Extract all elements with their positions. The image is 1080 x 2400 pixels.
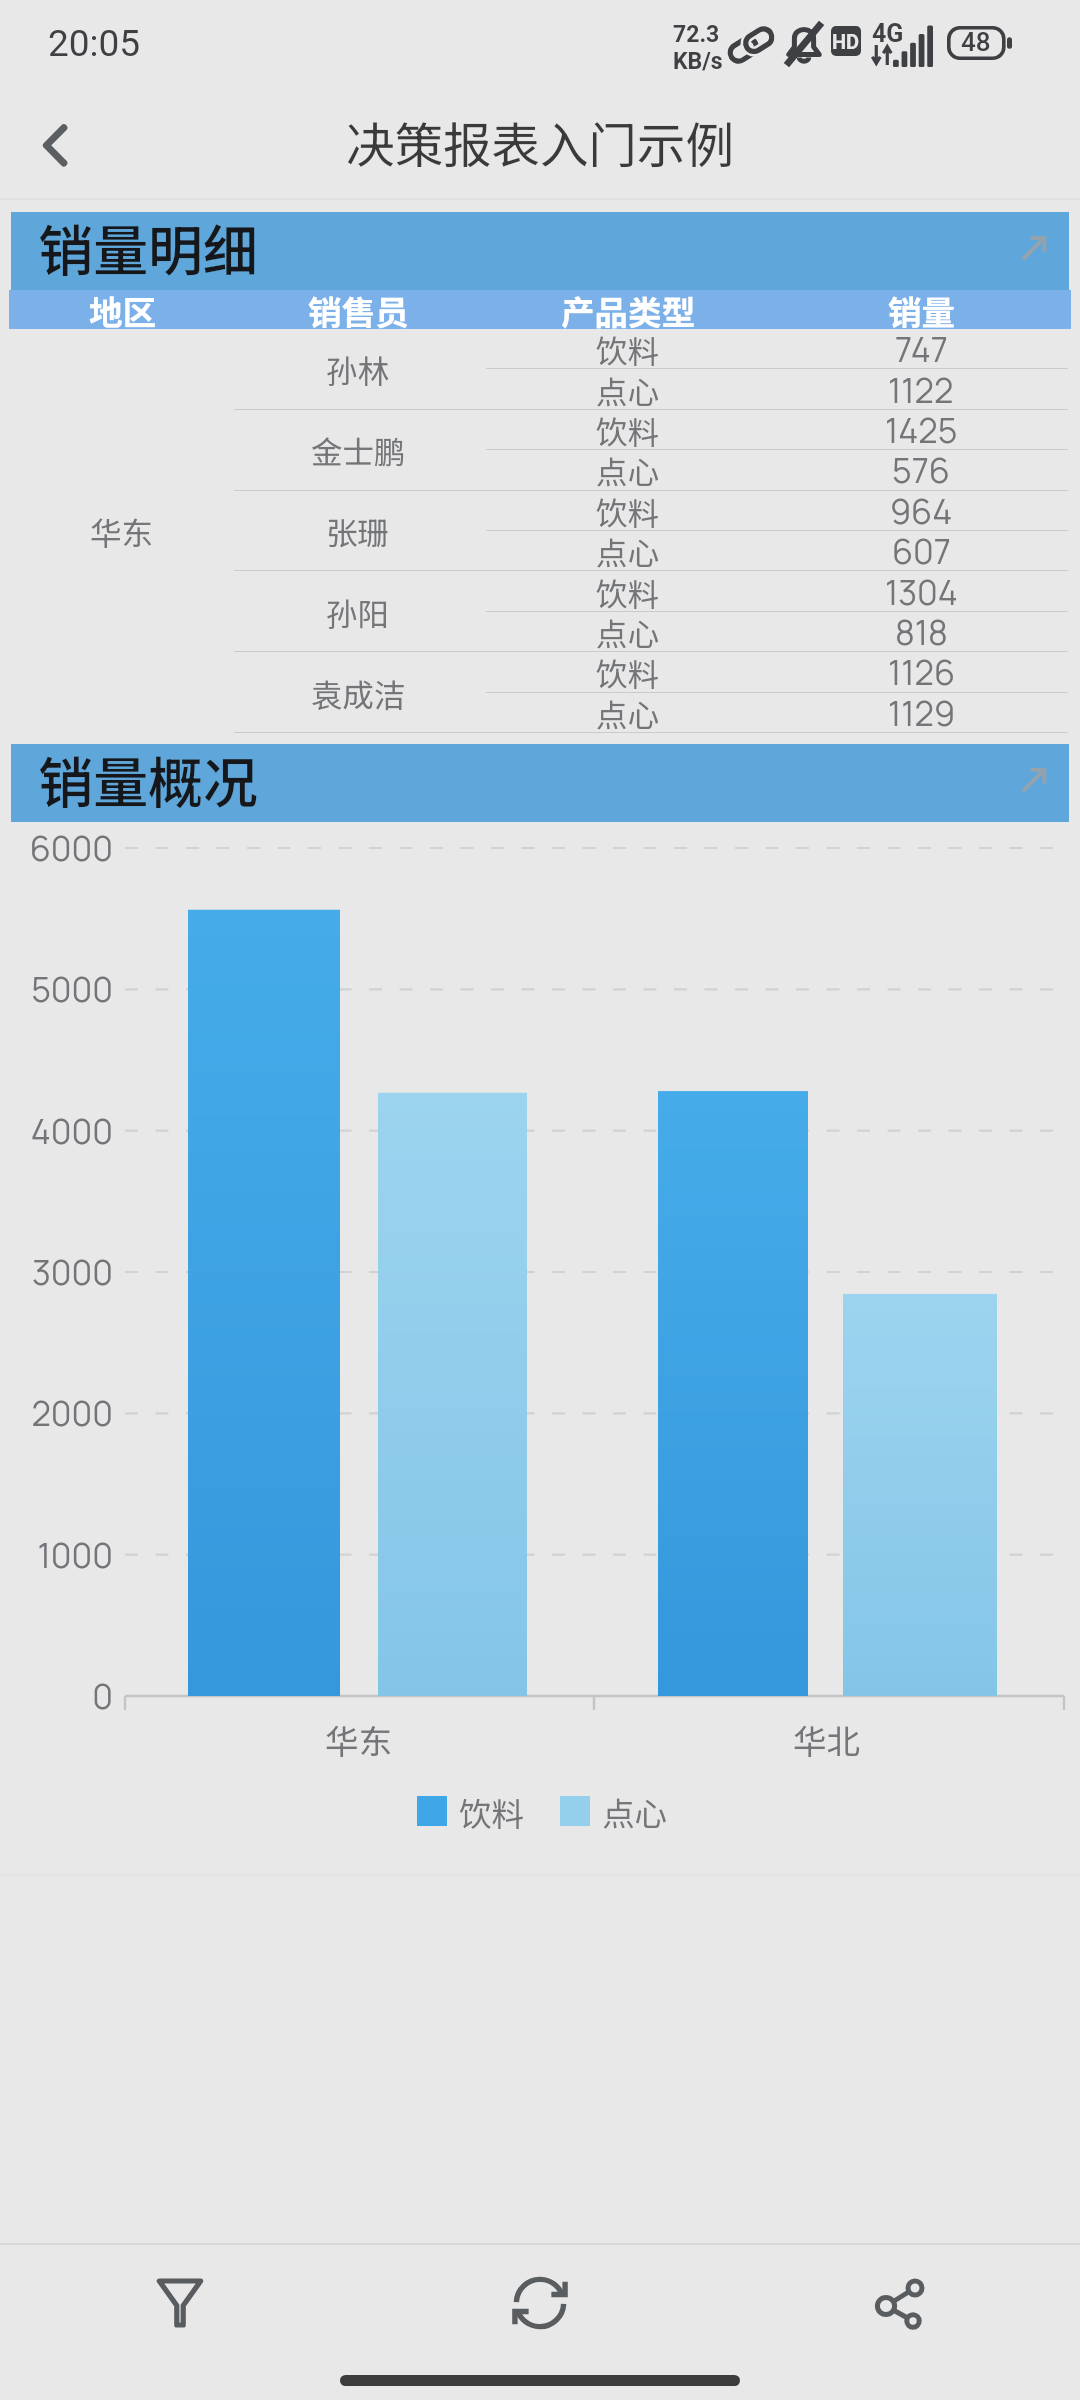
staticText: 20:05: [48, 22, 141, 65]
staticText: 6000: [29, 825, 113, 871]
staticText: 地区: [89, 286, 156, 335]
staticText: 607: [892, 528, 951, 574]
staticText: 点心: [596, 367, 660, 413]
staticText: 饮料: [596, 488, 660, 534]
staticText: 销量: [888, 286, 955, 335]
staticText: 1126: [888, 649, 955, 695]
staticText: HD: [832, 30, 860, 53]
button[interactable]: Refresh: [360, 2246, 720, 2360]
staticText: 576: [892, 447, 950, 493]
staticText: 1425: [885, 407, 958, 453]
staticText: 点心: [596, 528, 660, 574]
button[interactable]: 销量明细: [11, 212, 1069, 290]
staticText: 销量概况: [38, 739, 259, 817]
staticText: 华东: [90, 508, 154, 554]
button[interactable]: 销量概况: [11, 744, 1069, 822]
staticText: 48: [961, 27, 991, 57]
button[interactable]: Filter: [0, 2246, 360, 2360]
staticText: 0: [92, 1673, 113, 1719]
staticText: 产品类型: [561, 286, 695, 335]
staticText: 点心: [602, 1788, 668, 1835]
staticText: 818: [895, 609, 948, 655]
staticText: 1000: [37, 1532, 113, 1578]
staticText: 5000: [31, 966, 113, 1012]
staticText: 3000: [31, 1249, 113, 1295]
staticText: 1122: [888, 367, 954, 413]
staticText: 1304: [885, 569, 958, 615]
staticText: 销量明细: [38, 207, 259, 285]
staticText: 点心: [596, 690, 660, 736]
button[interactable]: Back: [16, 117, 96, 197]
staticText: 袁成洁: [311, 670, 406, 716]
staticText: 4G: [872, 19, 904, 48]
staticText: 张珊: [326, 508, 390, 554]
staticText: 华东: [325, 1715, 392, 1764]
staticText: 饮料: [596, 407, 660, 453]
staticText: KB/s: [673, 48, 723, 75]
staticText: 964: [890, 488, 953, 534]
staticText: 孙阳: [326, 589, 390, 635]
staticText: 4000: [30, 1108, 113, 1154]
staticText: 金士鹏: [311, 427, 406, 473]
staticText: 决策报表入门示例: [346, 107, 735, 177]
staticText: 饮料: [596, 569, 660, 615]
staticText: 华北: [793, 1715, 860, 1764]
staticText: 饮料: [596, 326, 660, 372]
staticText: 747: [895, 326, 948, 372]
staticText: 孙林: [326, 346, 390, 392]
staticText: 饮料: [596, 649, 660, 695]
staticText: 饮料: [459, 1788, 525, 1835]
staticText: 销售员: [308, 286, 409, 335]
staticText: 点心: [596, 447, 660, 493]
staticText: 2000: [31, 1390, 113, 1436]
button[interactable]: Share: [720, 2246, 1080, 2360]
staticText: 1129: [888, 690, 955, 736]
staticText: 72.3: [673, 21, 720, 48]
staticText: 点心: [596, 609, 660, 655]
